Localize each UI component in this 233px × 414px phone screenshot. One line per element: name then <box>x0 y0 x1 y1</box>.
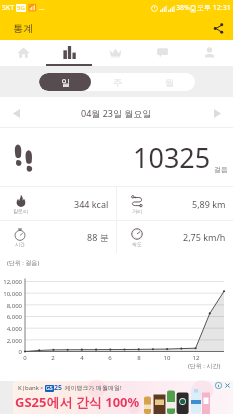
button[interactable]: Ranking <box>92 40 139 66</box>
staticText: 04월 23일 월요일 <box>81 107 152 119</box>
staticText: 344 kcal <box>74 198 109 210</box>
staticText: 5,89 km <box>192 198 226 210</box>
button[interactable]: Share <box>210 20 226 36</box>
button[interactable]: Messages <box>139 40 186 66</box>
staticText: SKT <box>2 3 15 13</box>
button[interactable]: Profile <box>186 40 233 66</box>
staticText: 2,000 <box>0 337 22 345</box>
staticText: 속도 <box>132 241 142 247</box>
staticText: 케이뱅크가 매월매일! <box>63 384 122 392</box>
staticText: 월 <box>165 77 174 88</box>
button[interactable]: 거리 <box>117 187 233 220</box>
staticText: 주 <box>113 77 122 88</box>
button[interactable]: 주 <box>91 73 143 91</box>
staticText: 6,000 <box>0 313 22 321</box>
button[interactable]: Statistics <box>46 40 92 66</box>
staticText: 오후 12:31 <box>197 3 231 13</box>
staticText: 12 <box>189 354 203 362</box>
staticText: ... <box>39 3 45 13</box>
staticText: 12,000 <box>0 278 22 286</box>
staticText: 10 <box>160 354 174 362</box>
button[interactable]: 칼로리 <box>0 187 116 220</box>
staticText: 0 <box>18 354 32 362</box>
button[interactable]: 월 <box>143 73 195 91</box>
button[interactable]: Advertisement <box>0 381 233 414</box>
staticText: × <box>39 385 45 392</box>
staticText: 4,000 <box>0 325 22 333</box>
staticText: 통계 <box>13 22 33 35</box>
staticText: 5G <box>17 4 25 12</box>
staticText: K|bank <box>18 384 39 392</box>
button[interactable]: Previous day <box>6 103 26 123</box>
staticText: 0 <box>0 348 22 356</box>
staticText: 📶 <box>28 4 37 12</box>
staticText: 거리 <box>132 208 142 214</box>
staticText: 25 <box>54 383 63 393</box>
staticText: (단위 : 시간) <box>188 362 221 370</box>
staticText: 10325 <box>133 139 211 176</box>
staticText: 38% <box>176 3 190 13</box>
staticText: 일 <box>61 77 70 88</box>
staticText: 8 <box>132 354 146 362</box>
staticText: 6 <box>103 354 117 362</box>
button[interactable]: Next day <box>207 103 227 123</box>
staticText: 4 <box>75 354 89 362</box>
staticText: 시간 <box>15 241 25 247</box>
staticText: 2 <box>46 354 60 362</box>
staticText: GS <box>46 385 53 392</box>
staticText: 걸음 <box>214 165 228 174</box>
button[interactable]: 시간 <box>0 221 116 253</box>
button[interactable]: 일 <box>39 73 91 91</box>
staticText: 88 분 <box>87 231 109 243</box>
staticText: 8,000 <box>0 302 22 310</box>
staticText: 10,000 <box>0 290 22 298</box>
button[interactable]: 속도 <box>117 221 233 253</box>
staticText: (단위 : 걸음) <box>7 259 40 267</box>
staticText: 2,75 km/h <box>183 231 226 243</box>
staticText: GS25에서 간식 100% <box>15 393 140 411</box>
staticText: 칼로리 <box>13 208 28 214</box>
button[interactable]: Home <box>0 40 46 66</box>
